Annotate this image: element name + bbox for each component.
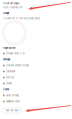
staticText: Storage cache (1 B) bbox=[6, 52, 25, 55]
staticText: Cache storage bbox=[6, 94, 19, 97]
staticText: Storage bbox=[3, 58, 10, 61]
staticText: Cookies bbox=[6, 82, 12, 85]
staticText: Your storage bbox=[3, 2, 19, 5]
staticText: Usage bbox=[3, 12, 9, 15]
staticText: Clear site data bbox=[6, 109, 19, 112]
staticText: Web SQL bbox=[6, 76, 14, 79]
button[interactable]: Clear site data bbox=[3, 108, 21, 113]
staticText: Cache bbox=[3, 88, 9, 91]
staticText: Application cache bbox=[6, 100, 20, 103]
staticText: https://example.com bbox=[3, 6, 23, 9]
staticText: Application bbox=[3, 47, 15, 49]
staticText: Local and session storage bbox=[6, 64, 29, 67]
staticText: 1 B used out of 2000 GB storage quota bbox=[3, 17, 40, 20]
staticText: IndexedDB bbox=[6, 70, 15, 73]
